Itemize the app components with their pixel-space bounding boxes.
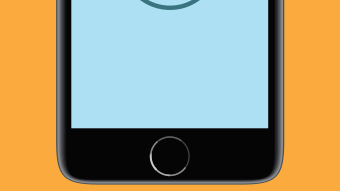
button[interactable]: Home: [149, 135, 191, 177]
